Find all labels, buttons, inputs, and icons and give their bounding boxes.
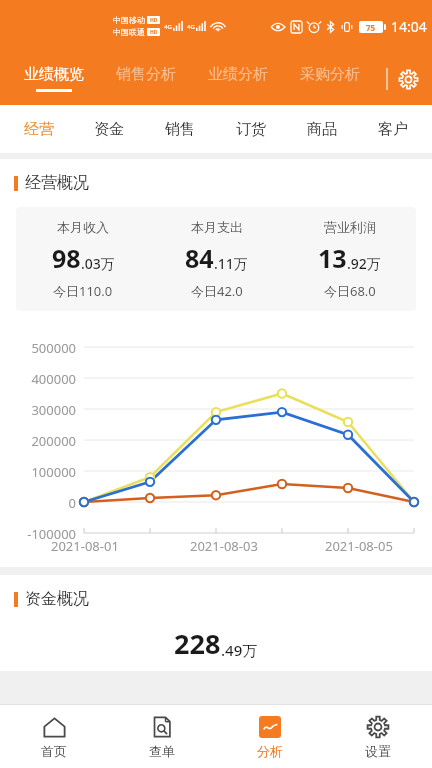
button[interactable]: 业绩分析 (192, 65, 284, 92)
staticText: 资金 (94, 120, 124, 139)
staticText: 采购分析 (300, 65, 360, 84)
staticText: 500000 (31, 339, 76, 357)
staticText: 200000 (31, 432, 76, 450)
button[interactable]: 客户 (357, 120, 428, 139)
staticText: 84 (185, 241, 214, 275)
staticText: HD (150, 29, 158, 36)
staticText: 业绩概览 (24, 65, 84, 84)
staticText: 资金概况 (25, 589, 89, 609)
staticText: 今日42.0 (191, 282, 243, 300)
button[interactable]: 本月收入 (16, 219, 150, 300)
button[interactable]: 商品 (286, 120, 357, 139)
staticText: 营业利润 (324, 219, 376, 235)
staticText: 本月支出 (191, 219, 243, 235)
staticText: 4G (187, 23, 195, 31)
button[interactable]: 本月支出 (150, 219, 283, 300)
button[interactable]: 采购分析 (284, 65, 376, 92)
staticText: 今日110.0 (53, 282, 113, 300)
button[interactable]: 订货 (215, 120, 286, 139)
staticText: 228 (174, 625, 221, 662)
staticText: 客户 (378, 120, 408, 139)
staticText: 分析 (257, 743, 283, 759)
staticText: 销售 (165, 120, 195, 139)
staticText: 4G (164, 23, 172, 31)
staticText: 2021-08-05 (325, 537, 393, 555)
staticText: 300000 (31, 401, 76, 419)
staticText: 查单 (149, 743, 175, 759)
button[interactable]: 销售 (144, 120, 215, 139)
staticText: .49万 (221, 640, 258, 660)
button[interactable]: 营业利润 (283, 219, 416, 300)
staticText: 订货 (236, 120, 266, 139)
staticText: 100000 (31, 463, 76, 481)
staticText: -100000 (27, 525, 76, 543)
staticText: 13 (318, 241, 347, 275)
staticText: 本月收入 (57, 219, 109, 235)
staticText: 75 (366, 22, 376, 33)
staticText: 14:04 (391, 17, 427, 36)
staticText: 首页 (41, 743, 67, 759)
staticText: 2021-08-03 (190, 537, 258, 555)
button[interactable]: 销售分析 (100, 65, 192, 92)
staticText: 98 (52, 241, 81, 275)
button[interactable]: 分析 (216, 714, 324, 759)
staticText: 销售分析 (116, 65, 176, 84)
button[interactable]: 设置 (392, 63, 424, 95)
button[interactable]: 查单 (108, 714, 216, 759)
staticText: 设置 (365, 743, 391, 759)
button[interactable]: 业绩概览 (8, 65, 100, 92)
staticText: .11万 (214, 254, 248, 273)
staticText: .03万 (81, 254, 115, 273)
staticText: 今日68.0 (324, 282, 376, 300)
staticText: 400000 (31, 370, 76, 388)
staticText: 经营 (24, 120, 54, 139)
button[interactable]: 设置 (324, 714, 432, 759)
button[interactable]: 经营 (4, 120, 74, 139)
staticText: .92万 (347, 254, 381, 273)
staticText: 0 (68, 494, 76, 512)
staticText: HD (150, 17, 158, 24)
button[interactable]: 资金 (74, 120, 144, 139)
staticText: 中国联通 (113, 27, 145, 37)
button[interactable]: 首页 (0, 714, 108, 759)
staticText: 经营概况 (25, 173, 89, 193)
staticText: 2021-08-01 (51, 537, 119, 555)
staticText: 中国移动 (113, 15, 145, 25)
staticText: 商品 (307, 120, 337, 139)
staticText: 业绩分析 (208, 65, 268, 84)
